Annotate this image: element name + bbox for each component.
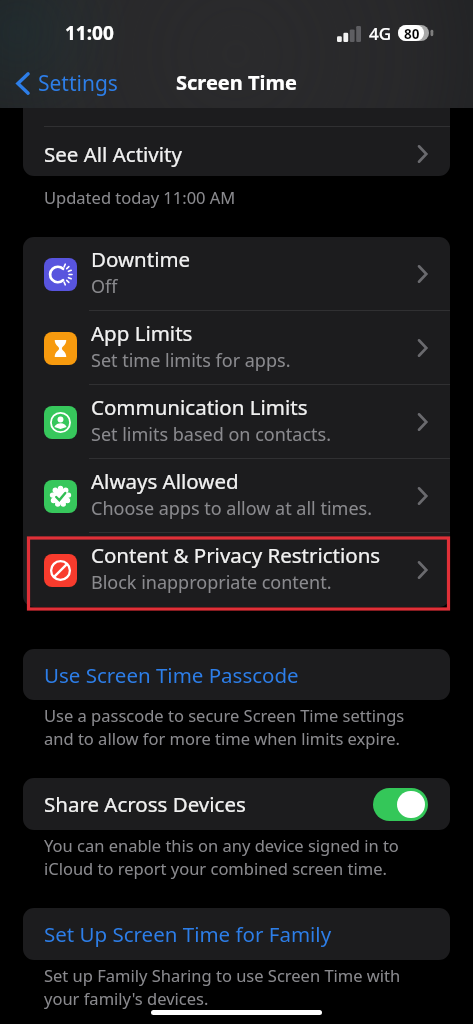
- staticText: Use Screen Time Passcode: [44, 661, 299, 689]
- button[interactable]: Communication Limits: [23, 385, 450, 459]
- staticText: Settings: [38, 69, 118, 98]
- staticText: Communication Limits: [91, 393, 308, 421]
- staticText: See All Activity: [44, 140, 417, 168]
- staticText: Choose apps to allow at all times.: [91, 496, 372, 521]
- button[interactable]: Use Screen Time Passcode: [23, 649, 450, 700]
- staticText: 4G: [369, 22, 392, 45]
- staticText: Downtime: [91, 245, 191, 273]
- staticText: 80: [404, 25, 420, 43]
- staticText: Set time limits for apps.: [91, 348, 291, 373]
- staticText: Set Up Screen Time for Family: [44, 920, 332, 948]
- staticText: App Limits: [91, 319, 193, 347]
- staticText: Content & Privacy Restrictions: [91, 541, 381, 569]
- staticText: Always Allowed: [91, 467, 239, 495]
- staticText: Set up Family Sharing to use Screen Time…: [44, 964, 432, 1010]
- button[interactable]: See All Activity: [23, 108, 450, 176]
- button[interactable]: Settings: [10, 66, 124, 101]
- staticText: Set limits based on contacts.: [91, 422, 331, 447]
- staticText: Screen Time: [176, 69, 297, 96]
- button[interactable]: Set Up Screen Time for Family: [23, 908, 450, 960]
- button[interactable]: Share Across Devices toggle: [373, 788, 428, 821]
- staticText: 11:00: [65, 20, 114, 46]
- button[interactable]: Downtime: [23, 237, 450, 311]
- staticText: Use a passcode to secure Screen Time set…: [44, 704, 432, 750]
- button[interactable]: Always Allowed: [23, 459, 450, 533]
- staticText: Off: [91, 274, 118, 299]
- staticText: Block inappropriate content.: [91, 570, 332, 595]
- staticText: Updated today 11:00 AM: [44, 186, 236, 208]
- staticText: Share Across Devices: [44, 790, 373, 818]
- button[interactable]: Content & Privacy Restrictions: [23, 533, 450, 607]
- staticText: You can enable this on any device signed…: [44, 834, 432, 880]
- button[interactable]: App Limits: [23, 311, 450, 385]
